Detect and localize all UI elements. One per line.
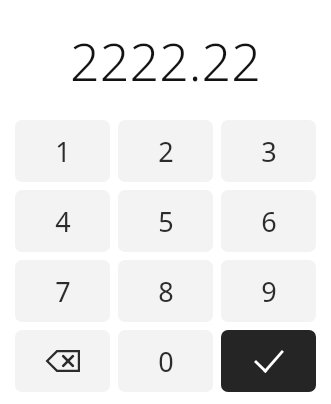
staticText: 9 xyxy=(261,273,277,310)
button[interactable]: 6 xyxy=(221,190,316,252)
staticText: 4 xyxy=(55,203,71,240)
staticText: 1 xyxy=(55,133,71,170)
button[interactable]: Confirm xyxy=(221,330,316,392)
staticText: 8 xyxy=(158,273,174,310)
button[interactable]: 0 xyxy=(118,330,213,392)
button[interactable]: 7 xyxy=(15,260,110,322)
button[interactable]: 5 xyxy=(118,190,213,252)
button[interactable]: 2 xyxy=(118,120,213,182)
button[interactable]: 8 xyxy=(118,260,213,322)
button[interactable]: 4 xyxy=(15,190,110,252)
staticText: 5 xyxy=(158,203,174,240)
staticText: 2222.22 xyxy=(70,25,261,96)
button[interactable]: Backspace xyxy=(15,330,110,392)
staticText: 3 xyxy=(261,133,277,170)
staticText: 7 xyxy=(55,273,71,310)
staticText: 0 xyxy=(158,343,174,380)
staticText: 2 xyxy=(158,133,174,170)
staticText: 6 xyxy=(261,203,277,240)
button[interactable]: 9 xyxy=(221,260,316,322)
button[interactable]: 1 xyxy=(15,120,110,182)
button[interactable]: 3 xyxy=(221,120,316,182)
